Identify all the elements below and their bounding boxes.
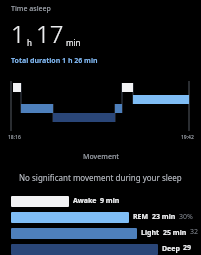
staticText: 29 min: [183, 243, 201, 255]
staticText: 30%: [179, 212, 193, 222]
staticText: 32%: [190, 227, 201, 239]
button[interactable]: Light: [0, 227, 201, 239]
staticText: 17: [36, 17, 64, 50]
staticText: Deep: [162, 244, 180, 254]
button[interactable]: Deep: [0, 243, 201, 255]
staticText: 19:42: [181, 134, 194, 141]
staticText: Light: [141, 228, 160, 238]
staticText: No significant movement during your slee…: [19, 172, 182, 183]
button[interactable]: REM: [0, 211, 201, 223]
staticText: Awake: [73, 196, 97, 206]
staticText: h: [27, 37, 32, 48]
button[interactable]: Sleep stages chart: [0, 75, 201, 141]
staticText: 18:16: [8, 134, 21, 141]
button[interactable]: Total duration 1 h 26 min: [11, 56, 98, 66]
staticText: min: [66, 37, 81, 48]
staticText: 25 min: [163, 228, 187, 238]
staticText: 23 min: [152, 212, 176, 222]
staticText: 1: [11, 17, 25, 50]
staticText: 9 min: [100, 196, 120, 206]
staticText: REM: [133, 212, 149, 222]
staticText: Time asleep: [11, 4, 51, 14]
button[interactable]: Awake: [0, 195, 201, 207]
staticText: Movement: [83, 152, 119, 162]
